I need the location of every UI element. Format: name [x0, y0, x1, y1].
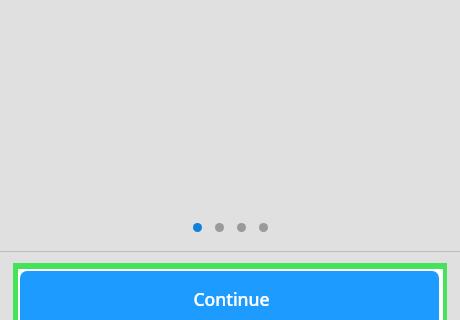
button[interactable]: Continue	[20, 271, 439, 320]
staticText: Continue	[193, 287, 270, 311]
button[interactable]: Page 4 of 4	[259, 223, 268, 232]
button[interactable]: Page 2 of 4	[215, 223, 224, 232]
button[interactable]: Page 3 of 4	[237, 223, 246, 232]
button[interactable]: Page 1 of 4, selected	[193, 223, 202, 232]
